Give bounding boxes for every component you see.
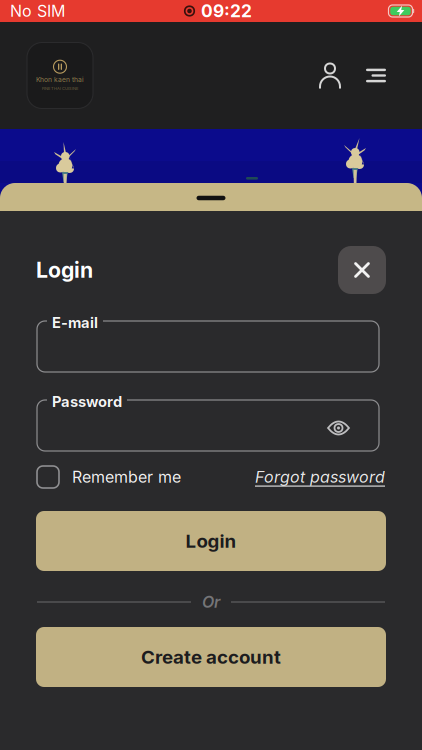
- staticText: Forgot password: [255, 468, 385, 486]
- staticText: Login: [36, 257, 93, 283]
- button[interactable]: Show password: [327, 420, 379, 435]
- button[interactable]: Create account: [36, 627, 386, 687]
- staticText: FINE THAI CUISINE: [42, 86, 78, 91]
- button[interactable]: Account: [318, 62, 342, 88]
- button[interactable]: Forgot password: [255, 468, 385, 486]
- staticText: Remember me: [72, 468, 181, 486]
- button[interactable]: Remember me: [37, 466, 59, 488]
- staticText: E-mail: [52, 314, 98, 331]
- staticText: Create account: [141, 646, 281, 668]
- staticText: Or: [202, 593, 220, 611]
- button[interactable]: Home: [27, 42, 93, 108]
- button[interactable]: Close: [338, 246, 386, 294]
- staticText: Khon kaen thai: [36, 76, 84, 84]
- staticText: No SIM: [10, 2, 65, 20]
- staticText: Login: [185, 530, 236, 552]
- button[interactable]: Login: [36, 511, 386, 571]
- staticText: Password: [52, 393, 122, 410]
- staticText: 09:22: [201, 1, 252, 21]
- button[interactable]: Menu: [366, 68, 386, 82]
